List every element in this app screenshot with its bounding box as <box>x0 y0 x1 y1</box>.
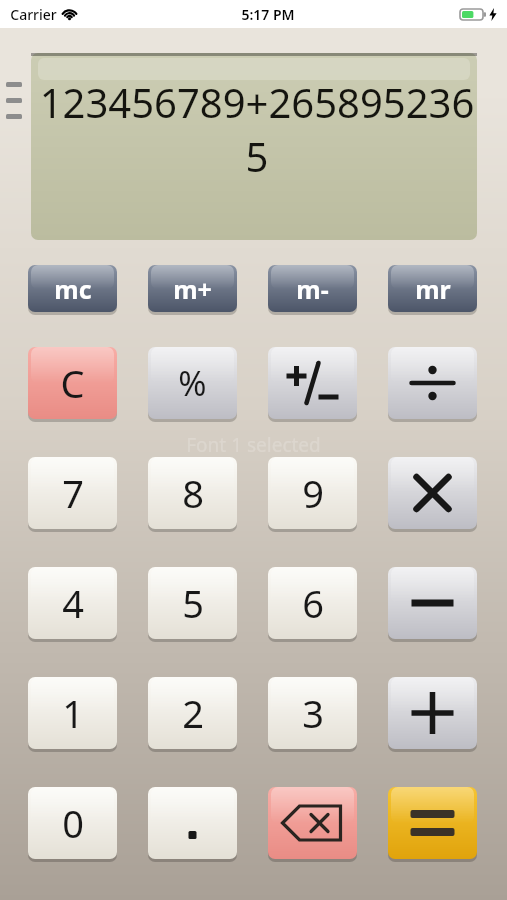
button[interactable]: Menu <box>6 82 22 120</box>
staticText: Carrier <box>10 5 57 24</box>
staticText: 7 <box>62 467 84 519</box>
staticText: m- <box>296 272 329 306</box>
button[interactable]: Divide <box>388 347 477 419</box>
button[interactable]: mc <box>28 265 117 312</box>
staticText: 4 <box>62 577 84 629</box>
button[interactable]: 0 <box>28 787 117 859</box>
button[interactable]: 8 <box>148 457 237 529</box>
button[interactable]: Plus minus <box>268 347 357 419</box>
button[interactable]: 2 <box>148 677 237 749</box>
button[interactable]: m- <box>268 265 357 312</box>
button[interactable]: C <box>28 347 117 419</box>
button[interactable]: m+ <box>148 265 237 312</box>
button[interactable]: 5 <box>148 567 237 639</box>
button[interactable]: 9 <box>268 457 357 529</box>
button[interactable]: % <box>148 347 237 419</box>
staticText: Font 1 selected <box>186 432 321 458</box>
staticText: 3 <box>302 687 324 739</box>
staticText: C <box>60 357 85 409</box>
button[interactable]: 4 <box>28 567 117 639</box>
staticText: 5:17 PM <box>241 5 295 24</box>
staticText: 6 <box>302 577 324 629</box>
button[interactable]: Equals <box>388 787 477 859</box>
staticText: % <box>178 360 207 406</box>
staticText: 8 <box>182 467 204 519</box>
staticText: 2 <box>182 687 204 739</box>
button[interactable]: Decimal point <box>148 787 237 859</box>
button[interactable]: 1 <box>28 677 117 749</box>
staticText: 5 <box>182 577 204 629</box>
button[interactable]: Backspace <box>268 787 357 859</box>
button[interactable]: 7 <box>28 457 117 529</box>
staticText: 123456789+2658952365 <box>37 75 477 183</box>
button[interactable]: 3 <box>268 677 357 749</box>
staticText: 1 <box>62 687 84 739</box>
staticText: 9 <box>302 467 324 519</box>
staticText: m+ <box>173 272 212 306</box>
button[interactable]: Subtract <box>388 567 477 639</box>
staticText: mc <box>54 272 92 306</box>
staticText: 0 <box>62 797 84 849</box>
button[interactable]: 6 <box>268 567 357 639</box>
staticText: mr <box>415 272 451 306</box>
button[interactable]: Add <box>388 677 477 749</box>
button[interactable]: Multiply <box>388 457 477 529</box>
button[interactable]: mr <box>388 265 477 312</box>
